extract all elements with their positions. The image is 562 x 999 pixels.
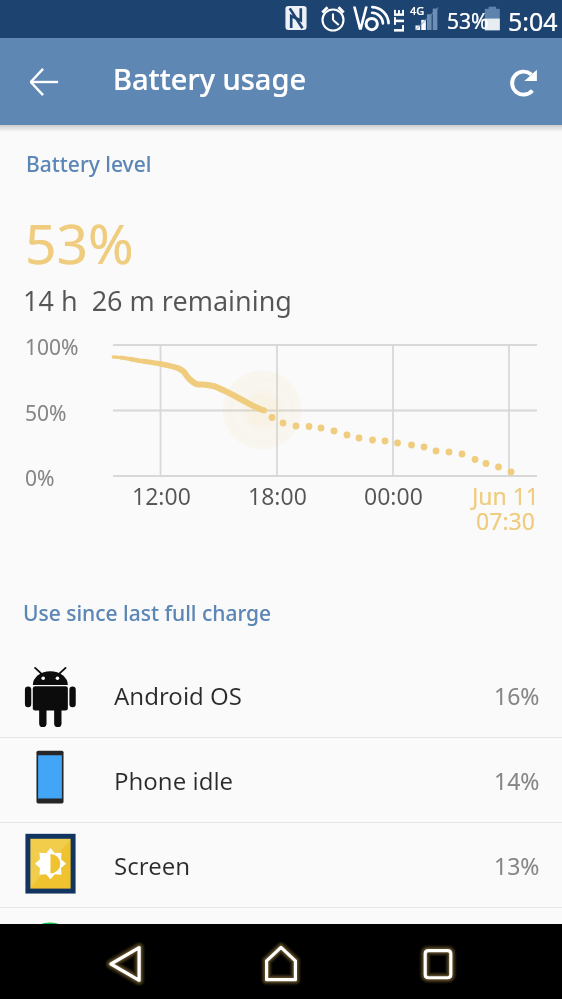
staticText: Phone idle [114,764,234,797]
staticText: Use since last full charge [23,599,272,628]
staticText: Android System [114,934,292,967]
staticText: 12:00 [132,480,191,511]
staticText: 50% [25,399,67,428]
staticText: Jun 11 07:30 [472,480,539,537]
staticText: Battery level [26,150,152,179]
button[interactable]: Refresh [500,58,548,106]
staticText: 0% [25,464,55,493]
staticText: 13% [494,850,540,881]
button[interactable]: Phone idle [0,738,562,822]
button[interactable]: Back [20,58,68,106]
button[interactable]: Android OS [0,653,562,737]
staticText: Battery usage [113,59,307,98]
staticText: 18:00 [248,480,307,511]
staticText: 14 h 26 m remaining [23,282,292,319]
staticText: 00:00 [364,480,423,511]
staticText: Android OS [114,679,242,712]
button[interactable]: Back [87,924,165,999]
staticText: 5:04 [508,4,558,38]
button[interactable]: Recent apps [399,924,477,999]
staticText: 14% [494,765,540,796]
staticText: Screen [114,849,191,882]
staticText: 53% [447,7,489,36]
staticText: 100% [25,333,79,362]
staticText: 4G [410,3,425,18]
button[interactable]: Home [242,924,320,999]
staticText: 16% [494,680,540,711]
button[interactable]: Android System [0,908,562,992]
staticText: LTE [388,8,407,32]
button[interactable]: Screen [0,823,562,907]
staticText: 53% [25,205,134,280]
